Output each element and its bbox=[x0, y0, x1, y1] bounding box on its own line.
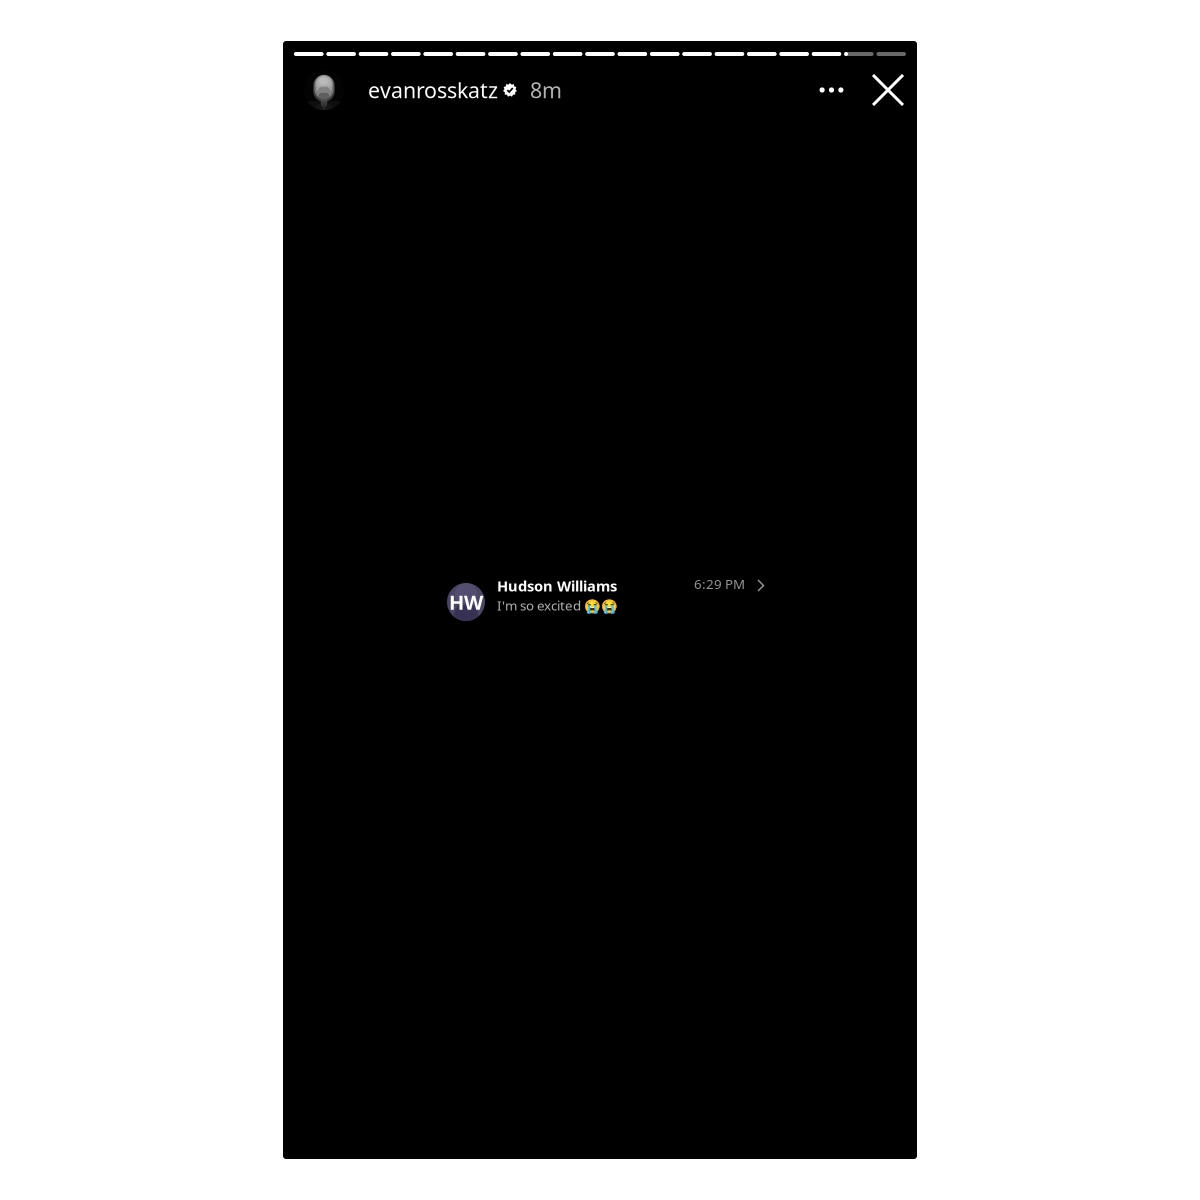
button[interactable]: evanrosskatz bbox=[304, 68, 562, 112]
button[interactable]: Previous story bbox=[283, 41, 494, 1159]
staticText: 6:29 PM bbox=[694, 575, 745, 593]
button[interactable]: Next story bbox=[494, 41, 917, 1159]
staticText: evanrosskatz bbox=[368, 76, 498, 104]
button[interactable]: More options bbox=[809, 68, 854, 112]
staticText: HW bbox=[449, 589, 483, 615]
staticText: I'm so excited 😭😭 bbox=[497, 596, 618, 614]
button[interactable]: Close story bbox=[866, 68, 910, 112]
staticText: Hudson Williams bbox=[497, 576, 617, 595]
staticText: 8m bbox=[530, 76, 562, 104]
button[interactable]: Hudson Williams, I'm so excited, 6:29 PM bbox=[447, 576, 765, 622]
